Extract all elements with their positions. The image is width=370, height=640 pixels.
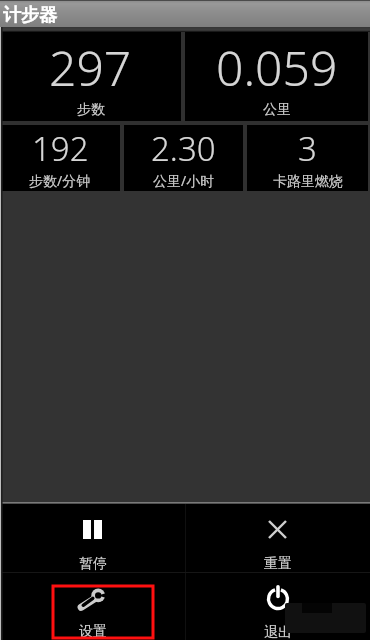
staticText: 公里 [263, 101, 291, 119]
button[interactable]: 297 [0, 32, 181, 121]
button[interactable]: 2.30 [124, 125, 243, 191]
other: Reset [268, 520, 287, 539]
button[interactable]: 3 [247, 125, 368, 191]
button[interactable]: Settings [0, 572, 185, 640]
button[interactable]: Reset [185, 504, 370, 572]
staticText: 步数 [77, 101, 105, 119]
button[interactable]: 0.059 [185, 32, 368, 121]
staticText: 步数/分钟 [29, 171, 91, 190]
staticText: 0.059 [216, 35, 338, 100]
staticText: 297 [49, 35, 132, 100]
other: Settings [78, 589, 108, 610]
staticText: 卡路里燃烧 [273, 173, 343, 191]
staticText: 192 [32, 126, 89, 171]
staticText: 重置 [264, 555, 292, 573]
staticText: 3 [298, 126, 317, 171]
button[interactable]: Pause [0, 504, 185, 572]
button[interactable]: Exit [185, 572, 370, 640]
staticText: 设置 [79, 623, 107, 640]
staticText: 暂停 [79, 555, 107, 573]
other: Pause [83, 520, 102, 539]
other: Exit [267, 585, 289, 609]
button[interactable]: 192 [0, 125, 120, 191]
staticText: 退出 [264, 624, 292, 640]
staticText: 2.30 [151, 126, 216, 171]
staticText: 计步器 [3, 4, 57, 27]
staticText: 公里/小时 [153, 171, 215, 190]
